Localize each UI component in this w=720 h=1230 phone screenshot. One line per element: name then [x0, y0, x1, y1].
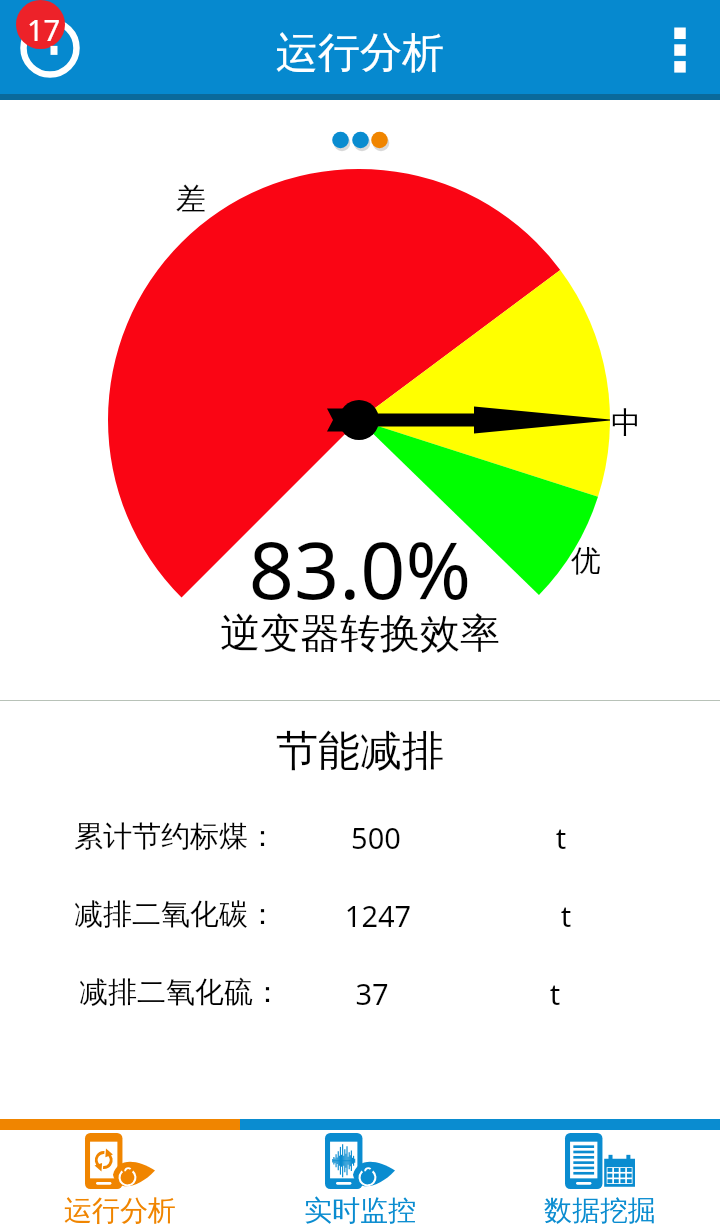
staticText: 减排二氧化碳：	[74, 896, 277, 933]
staticText: 逆变器转换效率	[0, 608, 720, 658]
staticText: 节能减排	[0, 725, 720, 778]
staticText: 17	[27, 10, 61, 49]
staticText: t	[525, 974, 585, 1013]
staticText: t	[531, 818, 591, 857]
staticText: 37	[312, 974, 432, 1013]
button[interactable]: Power	[10, 0, 106, 94]
staticText: 减排二氧化硫：	[79, 974, 282, 1011]
staticText: 实时监控	[304, 1193, 416, 1228]
staticText: 运行分析	[64, 1193, 176, 1228]
staticText: 累计节约标煤：	[74, 818, 277, 855]
staticText: 中	[611, 404, 641, 442]
button[interactable]: 运行分析	[0, 1130, 240, 1230]
button[interactable]: 实时监控	[240, 1130, 480, 1230]
staticText: 数据挖掘	[544, 1193, 656, 1228]
staticText: t	[536, 896, 596, 935]
button[interactable]: More options	[652, 22, 708, 78]
staticText: 优	[571, 542, 601, 580]
staticText: 1247	[318, 896, 438, 935]
button[interactable]: 数据挖掘	[480, 1130, 720, 1230]
staticText: 83.0%	[0, 515, 720, 623]
staticText: 500	[316, 818, 436, 857]
staticText: 运行分析	[276, 27, 444, 80]
staticText: 差	[176, 180, 206, 218]
